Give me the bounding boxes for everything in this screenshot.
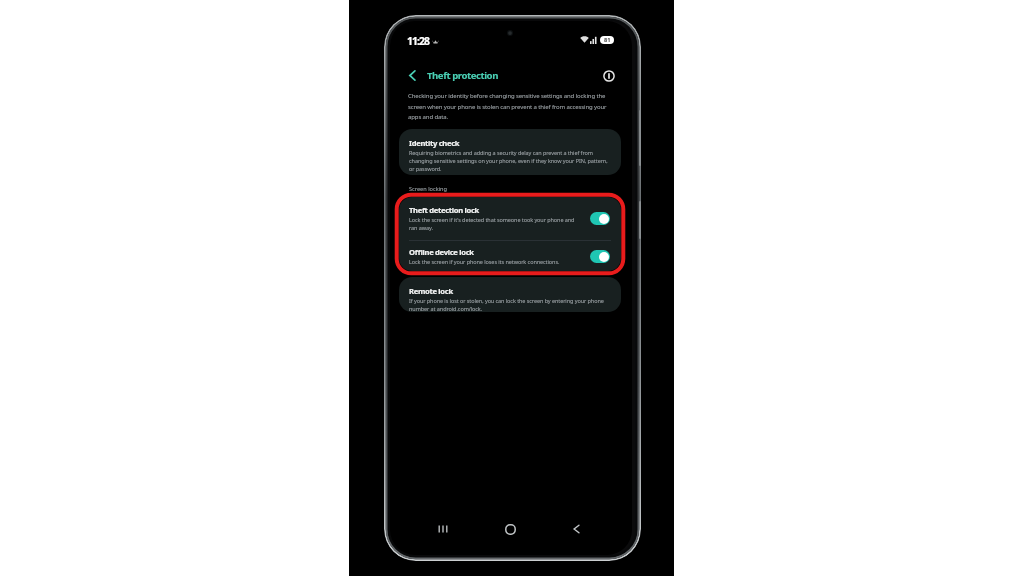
staticText: Requiring biometrics and adding a securi…: [409, 149, 613, 173]
staticText: Offline device lock: [409, 247, 474, 257]
staticText: Theft detection lock: [409, 205, 479, 215]
button[interactable]: Toggle on: [590, 212, 610, 225]
button[interactable]: Identity check: [399, 129, 621, 175]
button[interactable]: Information: [599, 66, 618, 85]
button[interactable]: Home: [495, 514, 525, 544]
staticText: Lock the screen if your phone loses its …: [409, 258, 560, 265]
staticText: Lock the screen if it's detected that so…: [409, 216, 583, 232]
staticText: 11:28: [407, 34, 429, 48]
staticText: Remote lock: [409, 286, 453, 296]
button[interactable]: Back: [403, 66, 422, 85]
staticText: Screen locking: [409, 185, 448, 193]
button[interactable]: Recent apps: [428, 514, 458, 544]
staticText: Theft protection: [427, 69, 498, 82]
button[interactable]: Theft detection lock: [399, 197, 621, 240]
button[interactable]: Offline device lock: [399, 241, 621, 271]
button[interactable]: Toggle on: [590, 250, 610, 263]
button[interactable]: Remote lock: [399, 277, 621, 312]
button[interactable]: Back: [561, 514, 591, 544]
staticText: Identity check: [409, 138, 460, 148]
staticText: Checking your identity before changing s…: [408, 92, 615, 121]
staticText: 81: [604, 36, 611, 44]
staticText: If your phone is lost or stolen, you can…: [409, 297, 613, 312]
